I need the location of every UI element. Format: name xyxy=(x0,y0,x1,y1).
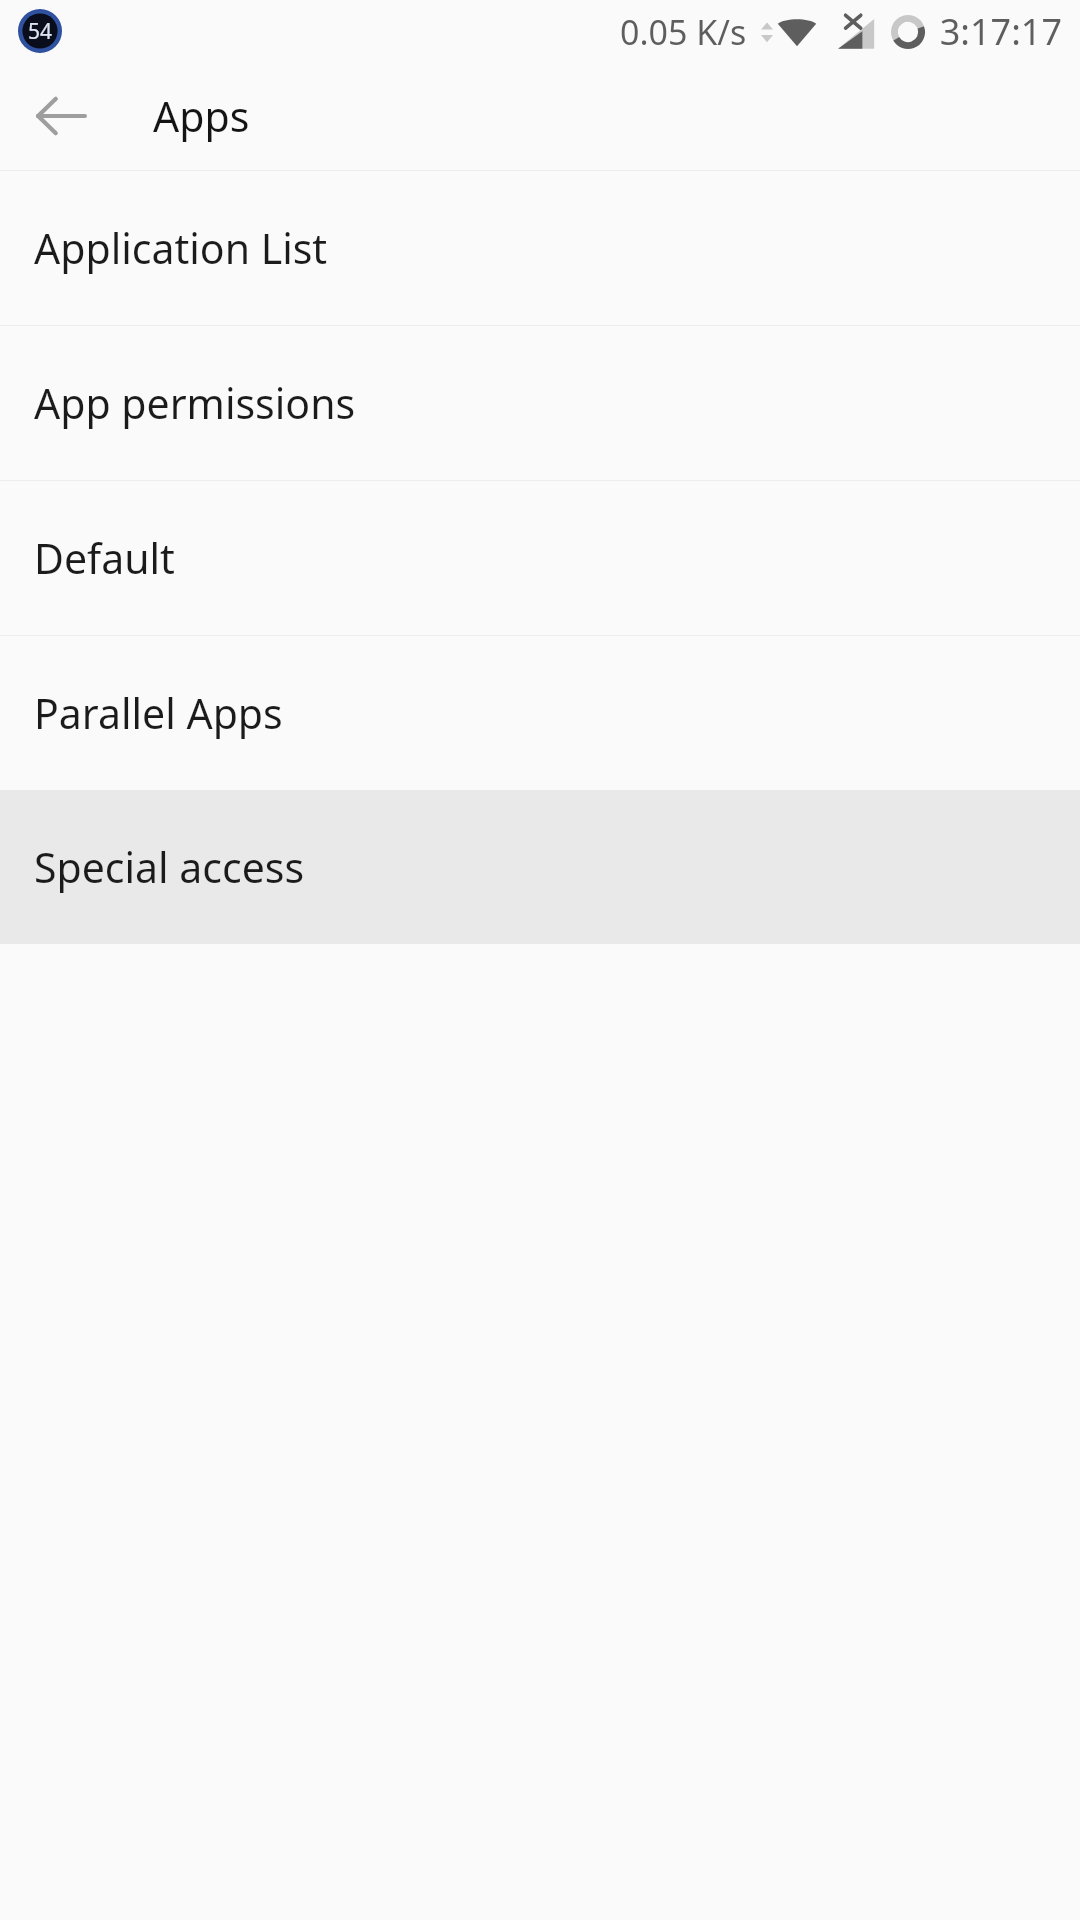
staticText: Parallel Apps xyxy=(34,685,283,741)
staticText: Default xyxy=(34,530,175,586)
button[interactable]: Special access xyxy=(0,790,1080,944)
button[interactable]: Application List xyxy=(0,171,1080,325)
button[interactable]: App permissions xyxy=(0,326,1080,480)
staticText: Application List xyxy=(34,220,328,276)
button[interactable]: Parallel Apps xyxy=(0,636,1080,790)
button[interactable]: Default xyxy=(0,481,1080,635)
staticText: 54 xyxy=(28,17,53,46)
button[interactable]: Back xyxy=(18,73,104,159)
staticText: Apps xyxy=(153,88,250,144)
staticText: App permissions xyxy=(34,375,356,431)
staticText: 3:17:17 xyxy=(939,7,1062,56)
staticText: Special access xyxy=(34,839,305,895)
staticText: 0.05 K/s xyxy=(620,9,747,55)
